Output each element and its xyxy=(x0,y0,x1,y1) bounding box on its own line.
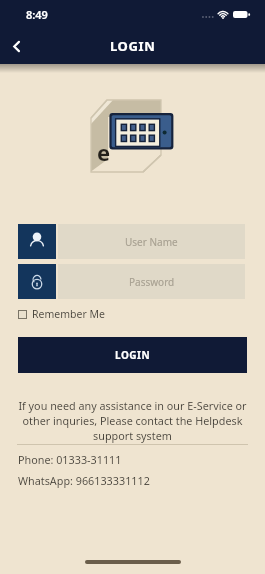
button[interactable]: User Name xyxy=(18,224,245,259)
button[interactable]: LOGIN xyxy=(18,337,247,373)
staticText: LOGIN xyxy=(115,348,151,362)
staticText: Phone: 01333-31111 xyxy=(18,452,122,467)
button[interactable]: Remember Me xyxy=(18,306,105,322)
staticText: e xyxy=(97,137,111,167)
staticText: Password xyxy=(129,275,175,289)
button[interactable]: Password xyxy=(18,264,245,299)
staticText: LOGIN xyxy=(110,37,156,55)
staticText: If you need any assistance in our E-Serv… xyxy=(17,398,248,443)
button[interactable]: Back xyxy=(1,31,31,61)
staticText: WhatsApp: 966133331112 xyxy=(18,473,150,488)
staticText: Remember Me xyxy=(32,307,105,321)
staticText: 8:49 xyxy=(26,7,48,22)
staticText: User Name xyxy=(125,235,178,249)
